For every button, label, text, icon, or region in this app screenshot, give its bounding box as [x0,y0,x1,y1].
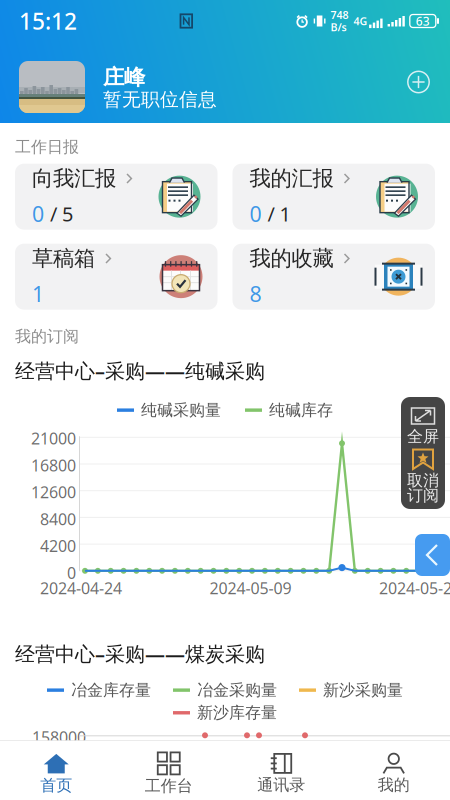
staticText: 新沙采购量 [323,680,403,700]
button[interactable]: 首页 [0,741,112,800]
staticText: 暂无职位信息 [103,88,217,111]
staticText: 4200 [40,535,76,556]
staticText: 12600 [31,481,76,503]
staticText: 首页 [40,776,72,795]
staticText: 我的 [378,775,410,795]
staticText: 15:12 [19,6,77,36]
staticText: 通讯录 [257,775,305,795]
staticText: 工作台 [145,776,193,796]
staticText: 纯碱采购量 [141,400,221,420]
staticText: 我的汇报 [249,165,333,192]
staticText: 取消 [407,471,439,490]
staticText: 8400 [40,508,76,530]
staticText: 158000 [32,726,86,747]
staticText: 2024-05-2 [379,577,450,598]
staticText: 冶金库存量 [71,680,151,700]
staticText: 新沙库存量 [197,703,277,723]
staticText: 工作日报 [15,137,79,157]
staticText: 我的收藏 [249,245,333,272]
staticText: 0 [32,200,44,228]
staticText: 1 [32,280,44,308]
button[interactable]: 我的 [337,741,450,800]
staticText: 4G [354,14,368,28]
staticText: / 5 [50,200,73,227]
staticText: 纯碱库存 [269,400,333,420]
button[interactable]: 向我汇报 [15,164,217,230]
staticText: 经营中心–采购——煤炭采购 [15,640,265,667]
staticText: 2024-04-24 [40,577,122,598]
button[interactable]: 草稿箱 [15,244,217,310]
staticText: 748 [331,8,349,22]
staticText: 订阅 [407,486,439,505]
staticText: 0 [249,200,261,228]
button[interactable]: Back [415,534,450,576]
staticText: 向我汇报 [32,165,116,192]
staticText: 16800 [31,455,76,476]
button[interactable]: Add [401,64,436,99]
staticText: 63 [416,13,430,29]
staticText: B/s [331,20,347,34]
staticText: 8 [249,280,261,308]
staticText: 庄峰 [103,64,145,91]
staticText: 草稿箱 [32,245,95,272]
staticText: / 1 [267,200,290,227]
staticText: 21000 [31,428,76,449]
button[interactable]: 我的收藏 [232,244,435,310]
button[interactable]: 通讯录 [225,741,337,800]
button[interactable]: 工作台 [112,741,225,800]
staticText: 冶金采购量 [197,680,277,700]
staticText: 全屏 [407,427,439,446]
staticText: 我的订阅 [15,327,79,346]
staticText: 经营中心–采购——纯碱采购 [15,357,265,384]
button[interactable]: 取消 [401,448,445,509]
staticText: 2024-05-09 [209,577,291,598]
staticText: 0 [67,562,76,583]
button[interactable]: 全屏 [401,397,445,448]
button[interactable]: 我的汇报 [232,164,435,230]
